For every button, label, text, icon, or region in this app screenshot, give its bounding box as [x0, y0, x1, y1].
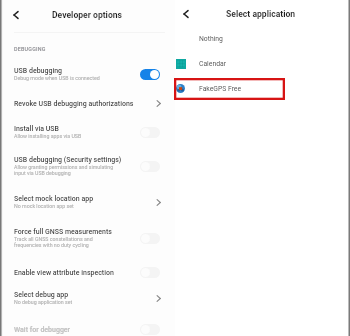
button[interactable]: Revoke USB debugging authorizations: [0, 96, 175, 122]
staticText: input via USB debugging: [14, 170, 71, 176]
button[interactable]: Calendar: [175, 51, 350, 76]
staticText: Developer options: [52, 10, 122, 20]
staticText: Wait for debugger: [14, 326, 71, 334]
staticText: Allow installing apps via USB: [14, 133, 82, 139]
button[interactable]: Switch off: [140, 233, 160, 244]
button[interactable]: Wait for debugger: [0, 321, 175, 336]
button[interactable]: Force full GNSS measurements: [0, 225, 175, 264]
button[interactable]: USB debugging (Security settings): [0, 153, 175, 192]
button[interactable]: Select debug app: [0, 288, 175, 321]
staticText: Enable view attribute inspection: [14, 269, 114, 277]
staticText: Select debug app: [14, 291, 69, 299]
button[interactable]: Enable view attribute inspection: [0, 264, 175, 288]
button[interactable]: Switch off: [140, 324, 160, 335]
staticText: Select mock location app: [14, 195, 94, 203]
staticText: Debug mode when USB is connected: [14, 75, 100, 81]
button[interactable]: Switch on: [140, 69, 160, 80]
button[interactable]: Nothing: [175, 26, 350, 51]
button[interactable]: Install via USB: [0, 122, 175, 153]
button[interactable]: USB debugging: [0, 64, 175, 96]
button[interactable]: Switch off: [140, 127, 160, 138]
button[interactable]: Switch off: [140, 267, 160, 278]
staticText: USB debugging (Security settings): [14, 156, 122, 164]
staticText: Allow granting permissions and simulatin…: [14, 164, 114, 170]
staticText: Calendar: [199, 60, 226, 68]
button[interactable]: Select mock location app: [0, 192, 175, 225]
staticText: Revoke USB debugging authorizations: [14, 100, 134, 108]
button[interactable]: Navigate back: [8, 7, 24, 23]
staticText: No debug application set: [14, 299, 73, 305]
staticText: Nothing: [199, 35, 223, 43]
button[interactable]: Navigate back: [178, 6, 194, 22]
button[interactable]: Switch off: [140, 161, 160, 172]
staticText: Select application: [226, 9, 296, 19]
staticText: No mock location app set: [14, 203, 74, 209]
staticText: frequencies with no duty cycling: [14, 242, 89, 248]
staticText: DEBUGGING: [14, 46, 46, 52]
staticText: FakeGPS Free: [199, 85, 242, 93]
staticText: Force full GNSS measurements: [14, 228, 112, 236]
staticText: Install via USB: [14, 125, 59, 133]
button[interactable]: FakeGPS Free: [175, 76, 350, 101]
staticText: Track all GNSS constellations and: [14, 236, 93, 242]
staticText: USB debugging: [14, 67, 63, 75]
